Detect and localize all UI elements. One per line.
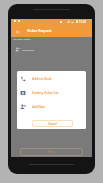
staticText: Existing Visitor List [32, 91, 59, 95]
button[interactable]: Cancel [32, 120, 73, 127]
button[interactable]: Back [12, 26, 23, 37]
staticText: 13:47 [79, 20, 87, 23]
button[interactable]: Address Book [17, 72, 86, 86]
button[interactable]: Existing Visitor List [17, 86, 86, 100]
staticText: Add New [32, 105, 45, 109]
staticText: Cancel [48, 122, 57, 126]
staticText: 4G [71, 20, 75, 23]
button[interactable]: Add Visitor [11, 45, 92, 53]
button[interactable]: Next [20, 148, 83, 156]
staticText: No Visitor Added [13, 38, 31, 41]
staticText: Add Visitor [22, 48, 35, 51]
staticText: Visitor Request [27, 28, 52, 33]
staticText: Address Book [32, 77, 52, 81]
button[interactable]: Add New [17, 100, 86, 114]
staticText: Next [48, 150, 55, 154]
